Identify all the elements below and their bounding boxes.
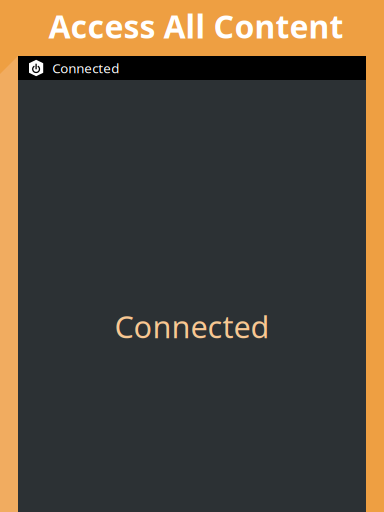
button[interactable]: Connected	[18, 56, 366, 80]
staticText: Connected	[114, 306, 269, 347]
staticText: Connected	[52, 59, 119, 77]
staticText: Access All Content	[48, 5, 343, 47]
